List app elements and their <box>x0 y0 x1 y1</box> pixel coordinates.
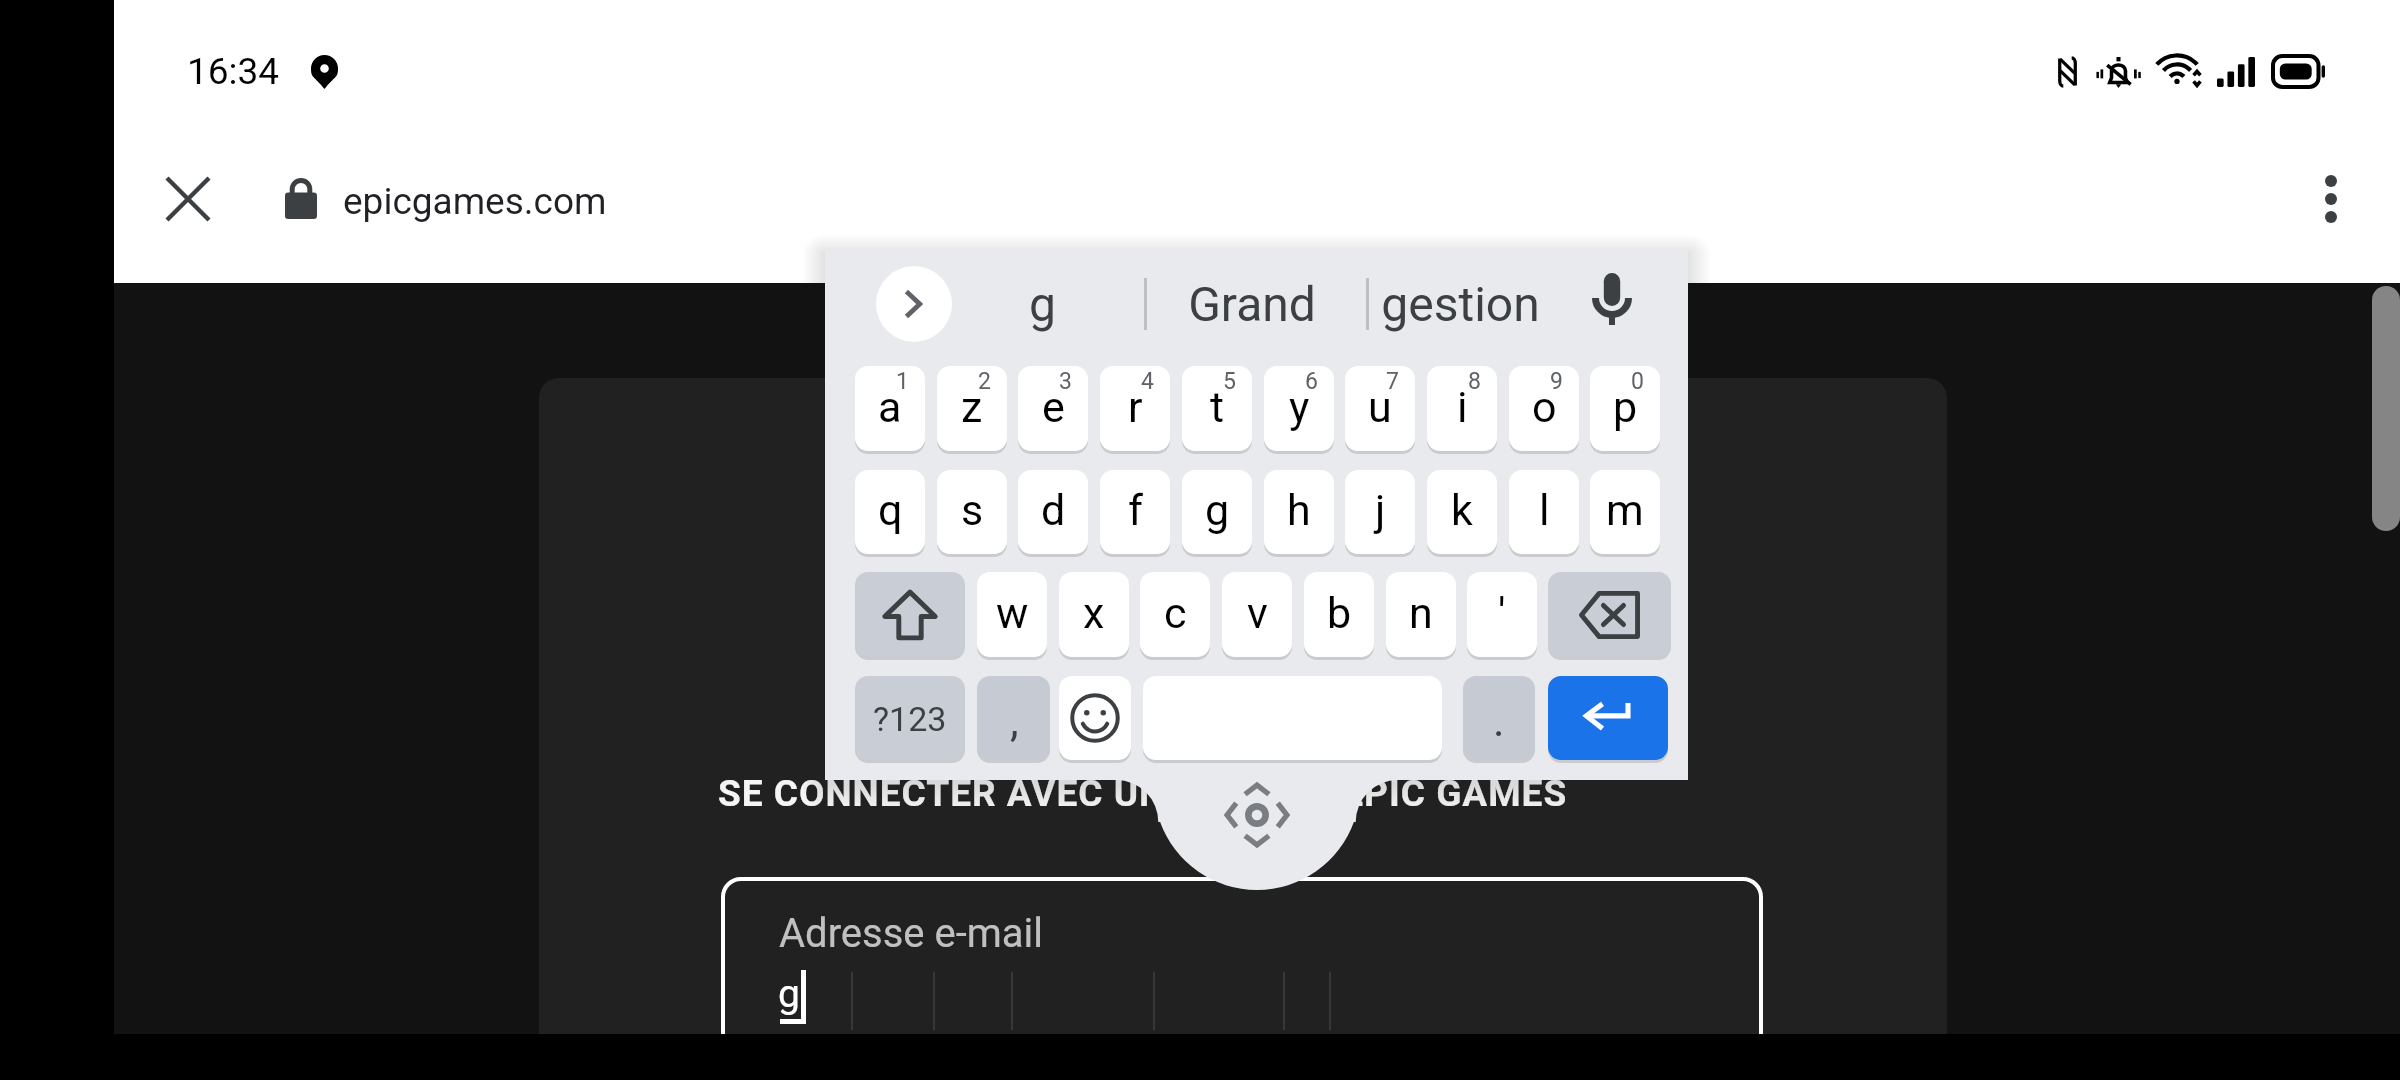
staticText: s <box>961 485 984 535</box>
button[interactable]: 6 <box>1264 366 1334 451</box>
staticText: 1 <box>896 368 909 395</box>
staticText: t <box>1210 382 1225 432</box>
button[interactable]: l <box>1509 470 1579 554</box>
staticText: i <box>1457 382 1468 432</box>
staticText: gestion <box>1381 276 1540 332</box>
staticText: a <box>878 382 902 432</box>
staticText: g <box>1205 485 1230 535</box>
staticText: 7 <box>1386 368 1399 395</box>
staticText: j <box>1375 485 1386 535</box>
button[interactable]: s <box>937 470 1007 554</box>
button[interactable]: q <box>855 470 925 554</box>
button[interactable]: 9 <box>1509 366 1579 451</box>
button[interactable]: Voice input <box>1572 259 1652 339</box>
staticText: 3 <box>1059 368 1072 395</box>
staticText: z <box>961 382 983 432</box>
staticText: y <box>1289 382 1310 432</box>
staticText: , <box>1010 695 1019 747</box>
staticText: w <box>996 588 1029 638</box>
staticText: Adresse e-mail <box>779 910 1044 957</box>
button[interactable]: 3 <box>1018 366 1088 451</box>
staticText: ?123 <box>873 699 947 739</box>
staticText: Grand <box>1188 276 1316 332</box>
staticText: ' <box>1498 588 1506 638</box>
staticText: g <box>1029 276 1056 332</box>
button[interactable]: Shift <box>855 572 965 657</box>
staticText: l <box>1539 485 1550 535</box>
button[interactable]: h <box>1264 470 1334 554</box>
staticText: e <box>1042 382 1065 432</box>
staticText: 4 <box>1141 368 1154 395</box>
staticText: 8 <box>1468 368 1481 395</box>
button[interactable]: v <box>1222 572 1292 657</box>
staticText: 16:34 <box>187 50 280 93</box>
button[interactable]: 7 <box>1345 366 1415 451</box>
button[interactable]: Emoji <box>1059 676 1131 760</box>
button[interactable]: 0 <box>1590 366 1660 451</box>
button[interactable]: 5 <box>1182 366 1252 451</box>
staticText: epicgames.com <box>343 180 607 223</box>
button[interactable]: Enter <box>1548 676 1668 760</box>
staticText: . <box>1493 695 1505 747</box>
button[interactable]: k <box>1427 470 1497 554</box>
staticText: h <box>1287 485 1311 535</box>
staticText: r <box>1128 382 1143 432</box>
button[interactable]: Period <box>1463 676 1535 760</box>
button[interactable]: 2 <box>937 366 1007 451</box>
button[interactable]: epicgames.com <box>279 120 1979 276</box>
staticText: m <box>1606 485 1644 535</box>
button[interactable]: Backspace <box>1548 572 1671 657</box>
staticText: SE CONNECTER AVEC UN COMPTE EPIC GAMES <box>718 772 1568 815</box>
button[interactable]: 8 <box>1427 366 1497 451</box>
button[interactable]: g <box>937 264 1147 344</box>
button[interactable]: Comma <box>977 676 1050 760</box>
button[interactable]: Adresse e-mail <box>721 877 1763 1034</box>
staticText: v <box>1247 588 1268 638</box>
staticText: c <box>1164 588 1187 638</box>
button[interactable]: x <box>1059 572 1129 657</box>
staticText: 6 <box>1305 368 1318 395</box>
staticText: k <box>1451 485 1473 535</box>
staticText: n <box>1409 588 1433 638</box>
button[interactable]: Expand toolbar <box>876 266 952 342</box>
button[interactable]: j <box>1345 470 1415 554</box>
staticText: o <box>1532 382 1557 432</box>
button[interactable]: Close <box>114 121 262 277</box>
button[interactable]: Grand <box>1147 264 1357 344</box>
button[interactable]: g <box>1182 470 1252 554</box>
button[interactable]: b <box>1304 572 1374 657</box>
staticText: g <box>778 971 800 1017</box>
staticText: x <box>1083 588 1105 638</box>
button[interactable]: gestion <box>1355 264 1565 344</box>
button[interactable]: 1 <box>855 366 925 451</box>
staticText: d <box>1041 485 1066 535</box>
staticText: 0 <box>1631 368 1644 395</box>
staticText: 5 <box>1223 368 1236 395</box>
button[interactable]: d <box>1018 470 1088 554</box>
staticText: q <box>878 485 903 535</box>
button[interactable]: Symbols <box>855 676 965 760</box>
button[interactable]: n <box>1386 572 1456 657</box>
staticText: p <box>1613 382 1638 432</box>
button[interactable]: 4 <box>1100 366 1170 451</box>
staticText: u <box>1368 382 1392 432</box>
staticText: b <box>1327 588 1352 638</box>
button[interactable]: Move keyboard <box>1223 781 1291 849</box>
staticText: f <box>1128 485 1143 535</box>
staticText: 2 <box>978 368 991 395</box>
button[interactable]: ' <box>1467 572 1537 657</box>
button[interactable]: f <box>1100 470 1170 554</box>
button[interactable]: m <box>1590 470 1660 554</box>
button[interactable]: More options <box>2257 121 2400 277</box>
staticText: 9 <box>1550 368 1563 395</box>
button[interactable]: w <box>977 572 1047 657</box>
button[interactable]: c <box>1140 572 1210 657</box>
